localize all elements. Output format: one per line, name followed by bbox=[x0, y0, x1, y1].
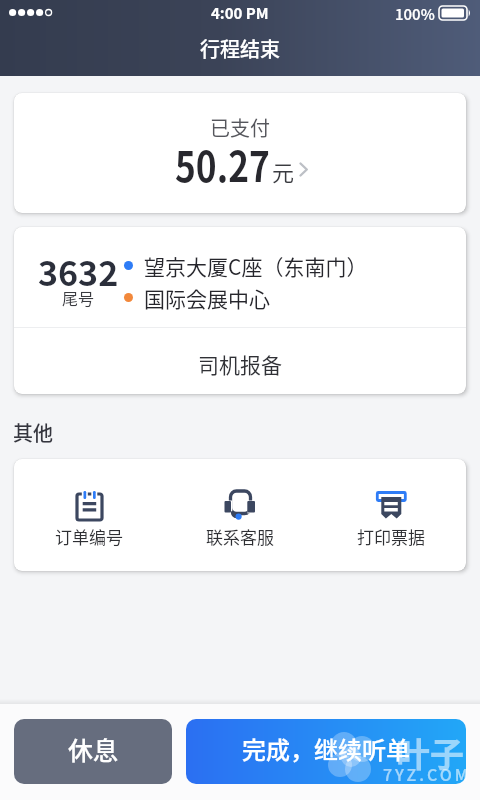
button[interactable]: 已支付 bbox=[14, 93, 466, 213]
staticText: 3632 bbox=[38, 247, 119, 296]
button[interactable]: 司机报备 bbox=[14, 328, 466, 394]
button[interactable]: 休息 bbox=[14, 719, 172, 784]
staticText: 订单编号 bbox=[55, 524, 123, 549]
staticText: 望京大厦C座（东南门） bbox=[144, 251, 368, 281]
button[interactable]: 订单编号 bbox=[14, 459, 164, 571]
staticText: 7YZ.COM bbox=[383, 762, 472, 785]
staticText: 已支付 bbox=[210, 113, 270, 142]
staticText: 司机报备 bbox=[198, 349, 282, 379]
staticText: 国际会展中心 bbox=[144, 283, 270, 313]
button[interactable]: 打印票据 bbox=[315, 459, 466, 571]
staticText: 叶子 bbox=[396, 728, 464, 777]
button[interactable]: 联系客服 bbox=[164, 459, 315, 571]
staticText: 行程结束 bbox=[200, 34, 280, 63]
staticText: 元 bbox=[272, 155, 295, 187]
staticText: 联系客服 bbox=[206, 524, 274, 549]
staticText: 50.27 bbox=[175, 133, 270, 194]
staticText: 打印票据 bbox=[357, 524, 425, 549]
staticText: 4:00 PM bbox=[211, 2, 269, 24]
staticText: 100% bbox=[395, 3, 435, 25]
button[interactable]: 完成，继续听单 bbox=[186, 719, 466, 784]
staticText: 完成，继续听单 bbox=[242, 731, 410, 766]
staticText: 其他 bbox=[13, 418, 53, 447]
staticText: 尾号 bbox=[62, 286, 95, 309]
staticText: 休息 bbox=[68, 731, 119, 767]
